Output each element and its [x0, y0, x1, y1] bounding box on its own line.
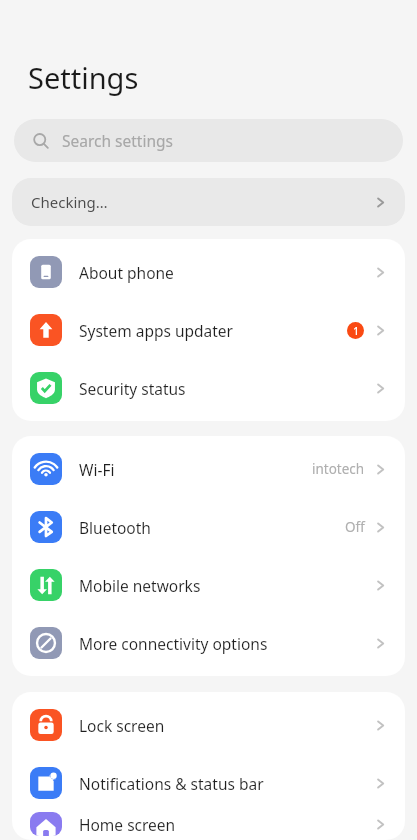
button[interactable]: Home screen [12, 812, 405, 836]
staticText: System apps updater [79, 320, 233, 341]
staticText: Off [345, 518, 365, 536]
staticText: 1 [353, 324, 359, 338]
staticText: intotech [312, 460, 365, 478]
button[interactable]: Search settings [14, 119, 403, 162]
button[interactable]: Lock screen [12, 696, 405, 754]
staticText: Security status [79, 378, 186, 399]
staticText: Home screen [79, 814, 176, 835]
staticText: More connectivity options [79, 633, 268, 654]
button[interactable]: More connectivity options [12, 614, 405, 672]
staticText: Lock screen [79, 715, 165, 736]
button[interactable]: Bluetooth [12, 498, 405, 556]
button[interactable]: Security status [12, 359, 405, 417]
staticText: Bluetooth [79, 517, 151, 538]
staticText: About phone [79, 262, 174, 283]
button[interactable]: Mobile networks [12, 556, 405, 614]
staticText: Wi-Fi [79, 459, 115, 480]
staticText: Settings [28, 58, 139, 97]
button[interactable]: System apps updater [12, 301, 405, 359]
button[interactable]: About phone [12, 243, 405, 301]
staticText: Mobile networks [79, 575, 201, 596]
button[interactable]: Checking… [12, 178, 405, 226]
staticText: Search settings [62, 130, 173, 151]
staticText: Checking… [31, 192, 108, 212]
button[interactable]: Wi-Fi [12, 440, 405, 498]
staticText: Notifications & status bar [79, 773, 264, 794]
button[interactable]: Notifications & status bar [12, 754, 405, 812]
